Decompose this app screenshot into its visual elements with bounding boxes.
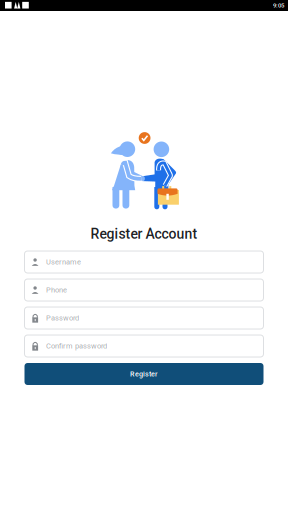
staticText: Phone bbox=[46, 286, 67, 294]
staticText: Register bbox=[130, 370, 158, 378]
staticText: Confirm password bbox=[46, 342, 107, 350]
staticText: Register Account bbox=[90, 226, 197, 242]
button[interactable]: Password bbox=[24, 307, 263, 329]
button[interactable]: Phone bbox=[24, 279, 263, 301]
staticText: Username bbox=[46, 258, 81, 266]
button[interactable]: Register bbox=[24, 363, 263, 385]
button[interactable]: Username bbox=[24, 251, 263, 273]
staticText: 9:05 bbox=[273, 2, 284, 9]
staticText: Password bbox=[46, 314, 79, 322]
button[interactable]: Confirm password bbox=[24, 335, 263, 357]
